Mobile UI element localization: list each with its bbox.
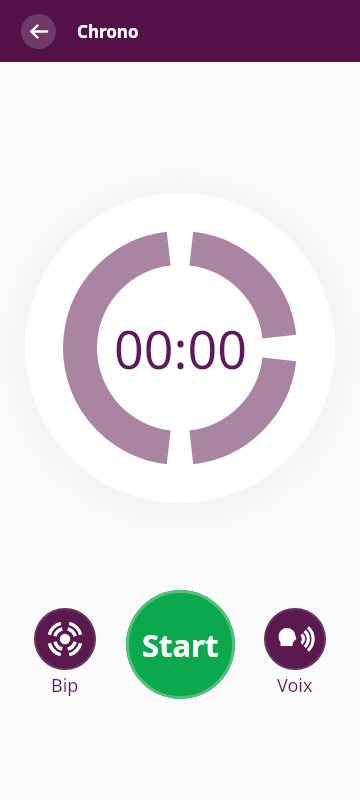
staticText: 00:00 [114,313,247,384]
staticText: Bip [51,673,79,698]
button[interactable] [264,608,326,670]
staticText: Voix [277,673,313,698]
button[interactable] [34,608,96,670]
staticText: Chrono [77,20,139,43]
button[interactable] [21,14,56,49]
staticText: Start [142,624,219,666]
button[interactable]: Start [126,590,235,699]
